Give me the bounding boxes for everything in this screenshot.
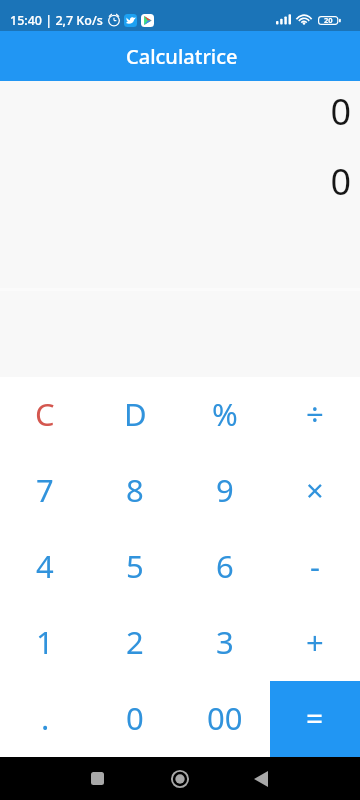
button[interactable]: 3 bbox=[180, 605, 270, 681]
staticText: ÷ bbox=[306, 393, 324, 435]
staticText: = bbox=[306, 698, 324, 739]
button[interactable]: C bbox=[0, 377, 90, 453]
button[interactable]: 1 bbox=[0, 605, 90, 681]
staticText: × bbox=[306, 469, 324, 511]
button[interactable]: - bbox=[270, 529, 360, 605]
button[interactable]: 00 bbox=[180, 681, 270, 757]
staticText: 20 bbox=[324, 15, 333, 25]
button[interactable]: 4 bbox=[0, 529, 90, 605]
button[interactable]: Recent apps bbox=[79, 760, 116, 797]
button[interactable]: 8 bbox=[90, 453, 180, 529]
staticText: % bbox=[212, 393, 238, 435]
staticText: D bbox=[124, 393, 147, 435]
staticText: + bbox=[306, 621, 324, 663]
staticText: 1 bbox=[36, 621, 54, 663]
staticText: 7 bbox=[36, 469, 54, 511]
staticText: 3 bbox=[216, 621, 234, 663]
button[interactable]: Home bbox=[161, 760, 198, 797]
button[interactable]: 6 bbox=[180, 529, 270, 605]
button[interactable]: 0 bbox=[90, 681, 180, 757]
staticText: 0 bbox=[330, 87, 351, 136]
staticText: 15:40 | 2,7 Ko/s bbox=[10, 12, 103, 29]
staticText: 9 bbox=[216, 469, 234, 511]
button[interactable]: = bbox=[270, 681, 360, 757]
staticText: - bbox=[310, 545, 320, 587]
button[interactable]: + bbox=[270, 605, 360, 681]
staticText: 0 bbox=[330, 157, 351, 206]
staticText: Calculatrice bbox=[126, 43, 238, 70]
staticText: 2 bbox=[126, 621, 144, 663]
button[interactable]: . bbox=[0, 681, 90, 757]
staticText: 0 bbox=[126, 697, 144, 739]
staticText: . bbox=[41, 697, 50, 739]
button[interactable]: 5 bbox=[90, 529, 180, 605]
staticText: 4 bbox=[36, 545, 54, 587]
staticText: C bbox=[35, 393, 55, 435]
button[interactable]: 9 bbox=[180, 453, 270, 529]
button[interactable]: 2 bbox=[90, 605, 180, 681]
staticText: 6 bbox=[216, 545, 234, 587]
staticText: 5 bbox=[126, 545, 144, 587]
button[interactable]: Back bbox=[242, 760, 279, 797]
button[interactable]: % bbox=[180, 377, 270, 453]
staticText: 8 bbox=[126, 469, 144, 511]
button[interactable]: × bbox=[270, 453, 360, 529]
button[interactable]: D bbox=[90, 377, 180, 453]
staticText: 00 bbox=[207, 697, 243, 739]
button[interactable]: ÷ bbox=[270, 377, 360, 453]
button[interactable]: 7 bbox=[0, 453, 90, 529]
